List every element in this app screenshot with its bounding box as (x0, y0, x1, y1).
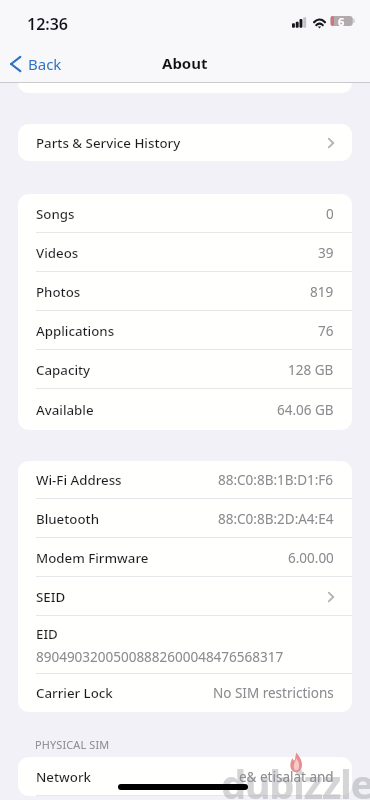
button[interactable]: EID (18, 616, 352, 674)
other: Cellular signal (292, 17, 308, 28)
staticText: dubizzle (221, 756, 370, 800)
button[interactable]: Photos (18, 272, 352, 311)
button[interactable]: Bluetooth (18, 499, 352, 538)
other: Battery 6 percent (330, 16, 355, 31)
staticText: 88:C0:8B:2D:A4:E4 (218, 510, 334, 528)
button[interactable]: SEID (18, 577, 352, 616)
staticText: 64.06 GB (277, 401, 334, 419)
staticText: Network (36, 768, 91, 786)
button[interactable]: Capacity (18, 350, 352, 389)
staticText: Songs (36, 205, 75, 223)
staticText: 39 (318, 244, 334, 262)
staticText: EID (36, 625, 58, 643)
staticText: 819 (310, 283, 334, 301)
staticText: Photos (36, 283, 81, 301)
button[interactable]: Songs (18, 194, 352, 233)
staticText: e& etisalat and (239, 768, 334, 786)
staticText: Modem Firmware (36, 549, 149, 567)
staticText: Videos (36, 244, 79, 262)
button[interactable]: Carrier Lock (18, 674, 352, 712)
staticText: SEID (36, 588, 66, 606)
staticText: 6 (338, 14, 345, 29)
staticText: Available (36, 401, 94, 419)
staticText: 128 GB (288, 361, 334, 379)
button[interactable]: Available (18, 389, 352, 430)
staticText: PHYSICAL SIM (35, 737, 110, 752)
other: Wi-Fi (312, 16, 328, 28)
staticText: No SIM restrictions (213, 684, 334, 702)
staticText: Parts & Service History (36, 134, 181, 152)
staticText: Applications (36, 322, 115, 340)
button[interactable]: Applications (18, 311, 352, 350)
staticText: 6.00.00 (288, 549, 334, 567)
button[interactable]: Modem Firmware (18, 538, 352, 577)
button[interactable]: Parts & Service History (18, 124, 352, 161)
staticText: 12:36 (27, 13, 69, 35)
staticText: 88:C0:8B:1B:D1:F6 (218, 471, 334, 489)
staticText: 89049032005008882600048476568317 (36, 648, 284, 666)
staticText: Back (28, 54, 62, 74)
button[interactable]: Wi-Fi Address (18, 461, 352, 499)
staticText: Capacity (36, 361, 91, 379)
staticText: Wi-Fi Address (36, 471, 122, 489)
staticText: 76 (318, 322, 334, 340)
staticText: Carrier Lock (36, 684, 113, 702)
staticText: 0 (326, 205, 334, 223)
staticText: About (162, 53, 208, 73)
button[interactable]: Back (0, 44, 68, 83)
button[interactable]: Network (18, 757, 352, 796)
staticText: Bluetooth (36, 510, 100, 528)
button[interactable]: Videos (18, 233, 352, 272)
